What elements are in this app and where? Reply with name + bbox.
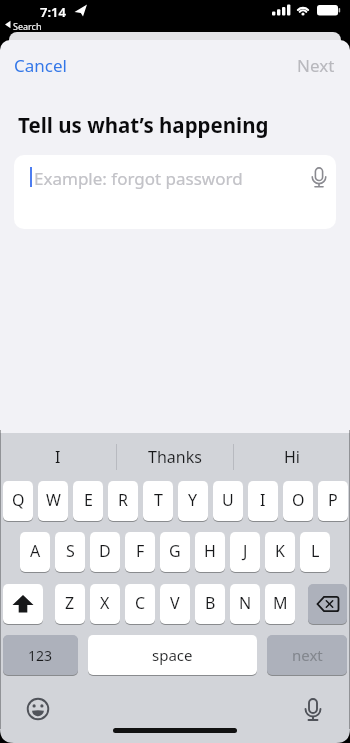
staticText: J (243, 540, 248, 562)
staticText: F (136, 540, 145, 562)
staticText: H (204, 540, 216, 562)
staticText: L (311, 540, 320, 562)
button[interactable]: G (160, 532, 190, 572)
staticText: X (100, 592, 110, 614)
staticText: P (328, 489, 338, 511)
staticText: C (135, 592, 146, 614)
button[interactable]: O (283, 481, 313, 521)
staticText: Z (65, 592, 75, 614)
staticText: 7:14 (40, 3, 66, 21)
button[interactable]: next (267, 635, 347, 675)
staticText: S (66, 540, 75, 562)
button[interactable]: S (55, 532, 85, 572)
button[interactable] (3, 584, 43, 624)
button[interactable]: Y (178, 481, 208, 521)
button[interactable]: R (108, 481, 138, 521)
staticText: I (260, 489, 266, 511)
button[interactable]: B (195, 584, 225, 624)
button[interactable]: U (213, 481, 243, 521)
button[interactable]: Next (297, 54, 335, 77)
staticText: Example: forgot password (34, 167, 243, 190)
button[interactable]: H (195, 532, 225, 572)
staticText: Hi (284, 446, 300, 468)
button[interactable]: E (73, 481, 103, 521)
button[interactable] (293, 688, 333, 732)
staticText: Q (12, 489, 25, 511)
button[interactable]: space (88, 635, 257, 675)
button[interactable]: Cancel (14, 54, 67, 77)
staticText: V (170, 592, 180, 614)
button[interactable]: I (248, 481, 278, 521)
staticText: E (84, 489, 93, 511)
button[interactable] (18, 689, 58, 729)
staticText: W (46, 489, 61, 511)
button[interactable]: X (90, 584, 120, 624)
staticText: Thanks (148, 446, 202, 468)
staticText: 123 (28, 646, 53, 665)
button[interactable]: Example: forgot password (14, 155, 336, 229)
button[interactable]: C (125, 584, 155, 624)
button[interactable]: J (230, 532, 260, 572)
staticText: T (154, 489, 163, 511)
button[interactable] (308, 584, 347, 624)
staticText: Cancel (14, 54, 67, 77)
staticText: K (275, 540, 285, 562)
button[interactable]: I (0, 433, 116, 481)
staticText: Search (13, 20, 42, 32)
staticText: Y (188, 489, 198, 511)
button[interactable]: 123 (3, 635, 78, 675)
staticText: M (273, 592, 288, 614)
button[interactable]: Z (55, 584, 85, 624)
button[interactable]: D (90, 532, 120, 572)
staticText: space (152, 645, 193, 665)
staticText: I (55, 446, 61, 468)
button[interactable]: N (230, 584, 260, 624)
staticText: U (222, 489, 234, 511)
button[interactable]: F (125, 532, 155, 572)
button[interactable]: W (38, 481, 68, 521)
button[interactable]: M (265, 584, 295, 624)
staticText: G (169, 540, 181, 562)
button[interactable]: P (318, 481, 348, 521)
button[interactable]: Thanks (117, 433, 233, 481)
staticText: D (99, 540, 111, 562)
button[interactable]: V (160, 584, 190, 624)
button[interactable]: Q (3, 481, 33, 521)
staticText: N (239, 592, 252, 614)
staticText: A (30, 540, 41, 562)
staticText: Tell us what’s happening (18, 111, 269, 139)
button[interactable]: Hi (234, 433, 350, 481)
staticText: B (205, 592, 216, 614)
button[interactable]: L (300, 532, 330, 572)
staticText: Next (297, 54, 335, 77)
button[interactable]: A (20, 532, 50, 572)
button[interactable]: K (265, 532, 295, 572)
button[interactable]: T (143, 481, 173, 521)
staticText: R (118, 489, 128, 511)
staticText: next (292, 645, 323, 665)
staticText: O (292, 489, 305, 511)
